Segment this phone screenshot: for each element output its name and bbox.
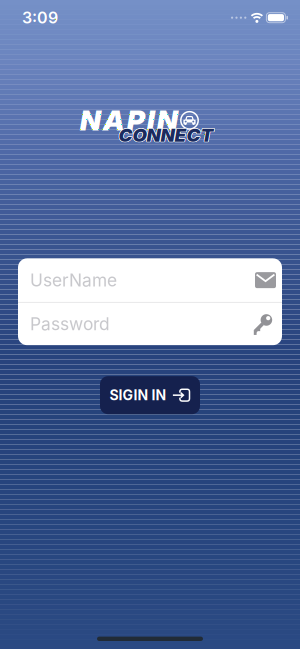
staticText: CONNECT bbox=[118, 124, 213, 147]
staticText: UserName bbox=[30, 270, 117, 291]
staticText: CONNECT bbox=[118, 124, 213, 147]
staticText: I bbox=[147, 103, 155, 137]
staticText: SIGIN IN bbox=[109, 387, 166, 404]
staticText: A bbox=[103, 103, 125, 137]
staticText: Password bbox=[30, 313, 110, 334]
staticText: CONNECT bbox=[119, 124, 214, 147]
staticText: CONNECT bbox=[118, 124, 213, 146]
staticText: CONNECT bbox=[118, 124, 213, 146]
staticText: CONNECT bbox=[119, 124, 214, 146]
staticText: CONNECT bbox=[118, 123, 213, 146]
button[interactable]: Password bbox=[18, 303, 282, 345]
button[interactable]: SIGIN IN bbox=[100, 376, 200, 414]
button[interactable]: UserName bbox=[18, 258, 282, 302]
staticText: N bbox=[80, 103, 101, 137]
staticText: 3:09 bbox=[22, 8, 58, 27]
staticText: CONNECT bbox=[118, 123, 213, 146]
staticText: N bbox=[157, 103, 178, 137]
staticText: CONNECT bbox=[119, 123, 214, 146]
staticText: P bbox=[127, 103, 145, 137]
